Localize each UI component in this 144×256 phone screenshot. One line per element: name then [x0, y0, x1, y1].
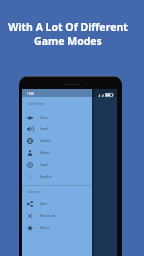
staticText: Game Modes — [34, 34, 102, 48]
button[interactable]: Rapid Fire — [22, 171, 92, 183]
staticText: Rapid Fire — [40, 175, 53, 179]
staticText: With A Lot Of Different — [8, 20, 128, 34]
button[interactable]: Sound — [22, 123, 92, 135]
staticText: Share — [40, 202, 47, 206]
staticText: Rate us — [40, 226, 49, 230]
button[interactable]: Release — [22, 147, 92, 159]
button[interactable]: Rate us — [22, 222, 92, 234]
staticText: Target — [40, 163, 48, 167]
staticText: Release — [40, 151, 50, 155]
staticText: Vision — [40, 116, 48, 120]
staticText: Reset Scores — [40, 214, 56, 218]
staticText: Game Modes — [28, 102, 45, 106]
staticText: 11:00 — [27, 92, 34, 96]
button[interactable]: Reset Scores — [22, 210, 92, 222]
button[interactable]: Share — [22, 198, 92, 210]
button[interactable]: Vision — [22, 112, 92, 124]
staticText: Vibration — [40, 139, 52, 143]
button[interactable]: Vibration — [22, 135, 92, 147]
staticText: Sound — [40, 127, 48, 131]
staticText: Support us — [28, 190, 42, 194]
button[interactable]: Target — [22, 159, 92, 171]
